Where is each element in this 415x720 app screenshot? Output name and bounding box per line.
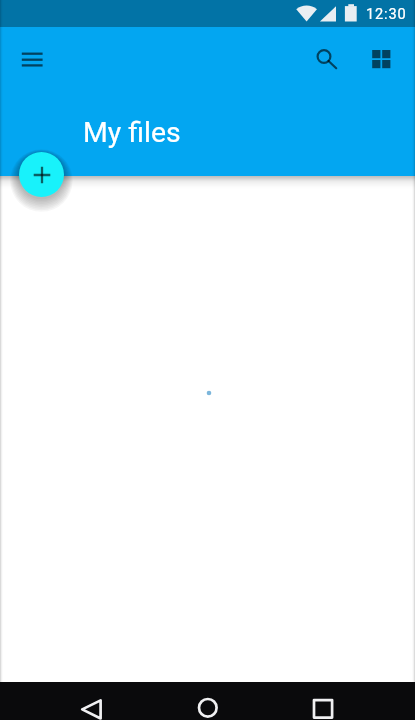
button[interactable]: Search — [302, 37, 347, 82]
staticText: 12:30 — [366, 5, 407, 22]
button[interactable]: Open navigation menu — [10, 37, 55, 82]
button[interactable]: Add new file — [19, 152, 64, 197]
button[interactable]: Back — [67, 684, 115, 720]
staticText: My files — [83, 116, 181, 149]
button[interactable]: Switch to grid view — [359, 37, 404, 82]
button[interactable]: Home — [184, 684, 232, 720]
button[interactable]: Recent apps — [299, 684, 347, 720]
